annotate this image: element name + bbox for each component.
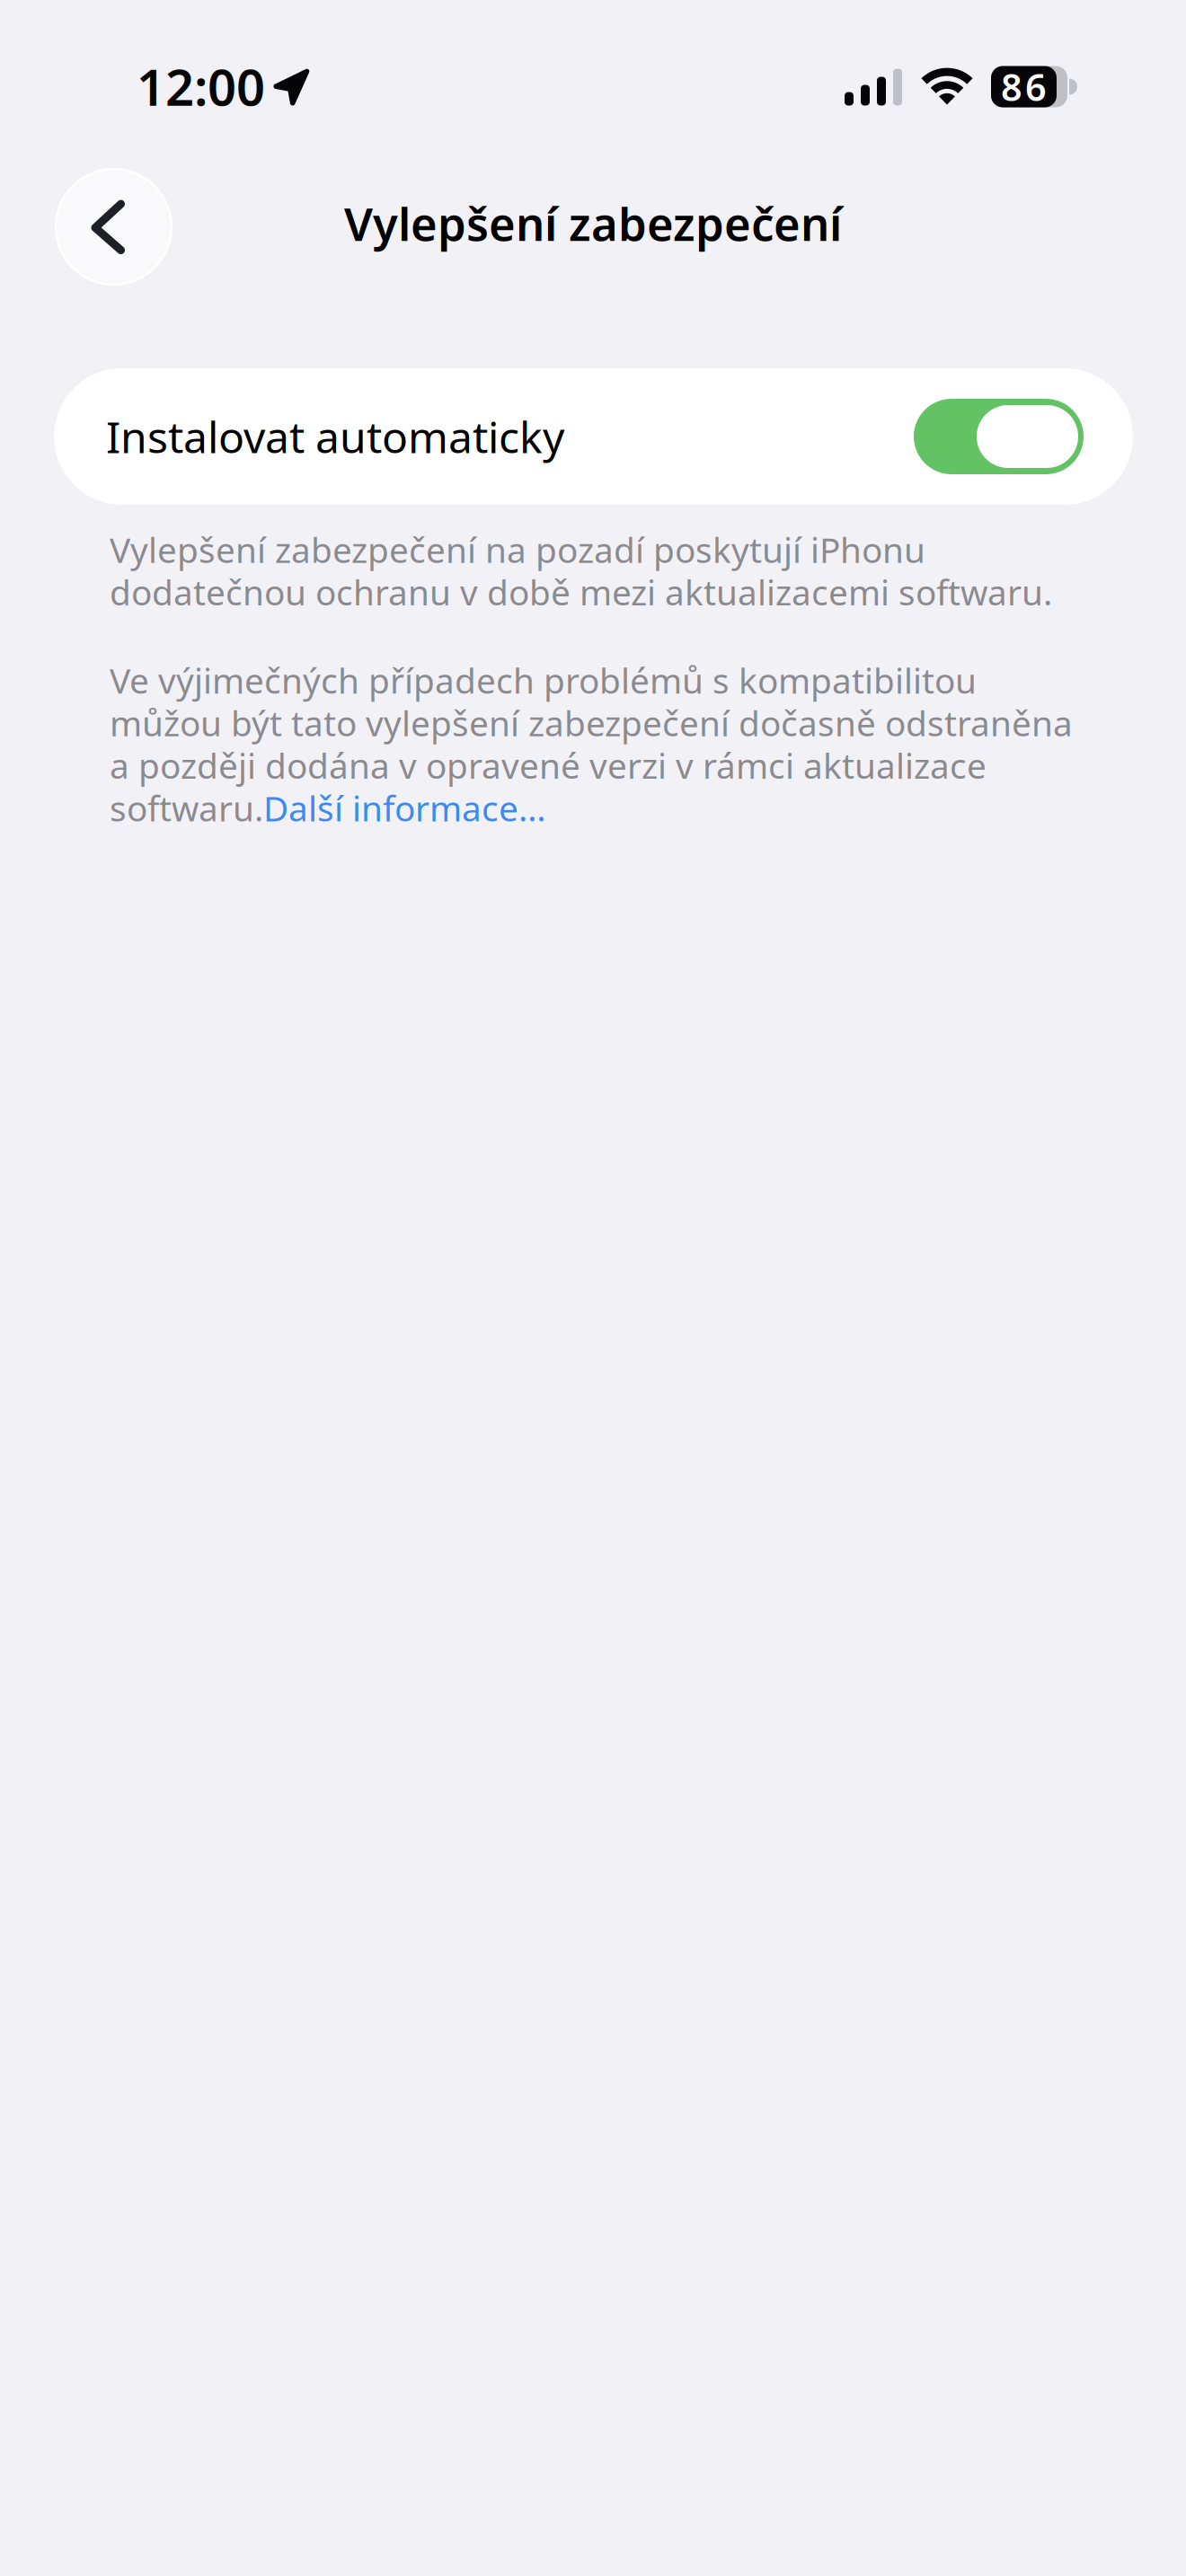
button[interactable]: Instalovat automaticky xyxy=(54,368,1133,505)
staticText: Vylepšení zabezpečení na pozadí poskytuj… xyxy=(110,526,1052,615)
staticText: Ve výjimečných případech problémů s komp… xyxy=(110,657,1073,831)
staticText: Vylepšení zabezpečení xyxy=(344,193,842,254)
staticText: 12:00 xyxy=(137,53,265,120)
button[interactable]: Back xyxy=(55,168,173,286)
staticText: Instalovat automaticky xyxy=(106,408,564,465)
staticText: 86 xyxy=(1001,62,1047,111)
